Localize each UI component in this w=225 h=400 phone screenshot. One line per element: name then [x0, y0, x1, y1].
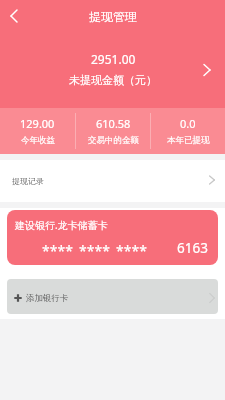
staticText: **** — [116, 241, 147, 260]
staticText: 提现记录 — [12, 176, 44, 186]
button[interactable]: Back — [2, 4, 26, 28]
staticText: 未提现金额（元） — [69, 73, 157, 87]
button[interactable]: 129.00 — [0, 108, 75, 154]
button[interactable]: 0.0 — [151, 108, 225, 154]
staticText: **** — [79, 241, 110, 260]
staticText: 129.00 — [20, 116, 55, 131]
staticText: **** — [42, 241, 73, 260]
staticText: 0.0 — [180, 116, 196, 131]
staticText: 建设银行.龙卡储蓄卡 — [15, 218, 108, 232]
staticText: 610.58 — [96, 116, 131, 131]
staticText: 今年收益 — [21, 135, 55, 146]
button[interactable]: 610.58 — [76, 108, 150, 154]
button[interactable]: 建设银行.龙卡储蓄卡 — [7, 210, 218, 265]
staticText: 本年已提现 — [167, 135, 210, 146]
button[interactable]: Withdraw detail — [195, 58, 219, 82]
staticText: 提现管理 — [89, 9, 137, 24]
button[interactable]: 提现记录 — [0, 160, 225, 202]
staticText: 交易中的金额 — [88, 135, 139, 146]
staticText: 添加银行卡 — [26, 293, 69, 304]
staticText: 6163 — [177, 239, 208, 257]
staticText: 2951.00 — [91, 51, 136, 67]
button[interactable]: 添加银行卡 — [7, 279, 218, 314]
